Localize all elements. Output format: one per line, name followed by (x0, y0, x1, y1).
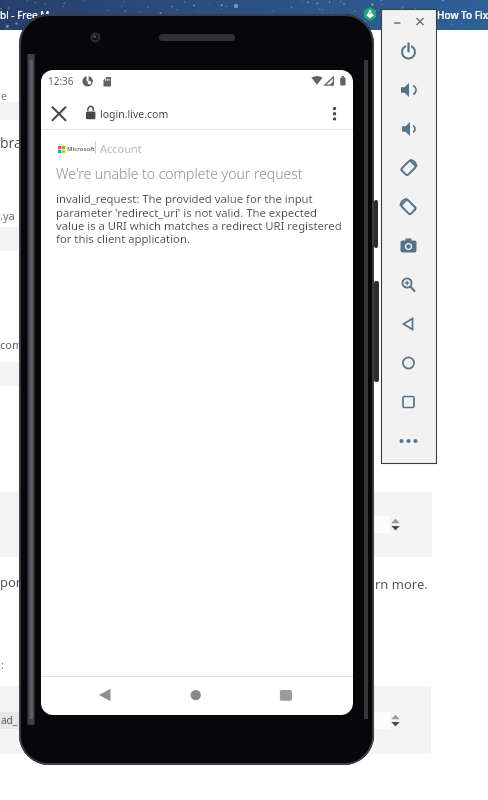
button[interactable] (395, 272, 423, 298)
button[interactable] (395, 428, 423, 454)
staticText: login.live.com (100, 107, 169, 121)
button[interactable] (374, 712, 401, 729)
staticText: invalid_request: The provided value for … (56, 191, 342, 246)
button[interactable] (395, 155, 423, 181)
staticText: port (0, 573, 26, 591)
button[interactable] (395, 350, 423, 376)
staticText: Account (100, 141, 142, 156)
button[interactable] (181, 682, 211, 710)
staticText: .ya (0, 208, 15, 223)
button[interactable] (412, 13, 428, 29)
staticText: : (1, 657, 4, 672)
staticText: bra (0, 133, 22, 152)
button[interactable] (395, 77, 423, 103)
button[interactable] (374, 516, 401, 533)
button[interactable] (395, 233, 423, 259)
staticText: 12:36 (48, 74, 74, 88)
button[interactable]: bl - Free M (0, 0, 488, 30)
staticText: rn more. (375, 575, 428, 593)
button[interactable] (89, 682, 121, 710)
staticText: We're unable to complete your request (56, 164, 303, 183)
button[interactable] (395, 389, 423, 415)
staticText: ad_ (1, 713, 18, 727)
button[interactable] (395, 38, 423, 64)
staticText: com (0, 337, 23, 352)
button[interactable] (389, 15, 405, 29)
staticText: How To Fix I (437, 8, 488, 22)
staticText: e (1, 88, 8, 103)
staticText: Microsoft (67, 145, 95, 153)
button[interactable] (265, 682, 295, 710)
staticText: bl - Free M (0, 8, 50, 22)
button[interactable]: login.live.com (41, 94, 353, 129)
button[interactable] (395, 311, 423, 337)
button[interactable] (395, 116, 423, 142)
button[interactable] (395, 194, 423, 220)
